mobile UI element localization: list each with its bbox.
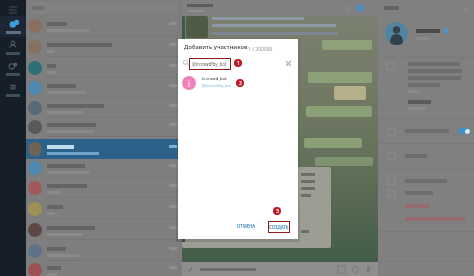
staticText: СОЗДАТЬ <box>269 224 289 230</box>
staticText: @itcrowdfby_bot <box>192 61 227 67</box>
button[interactable]: Удалить чат <box>378 214 474 226</box>
button[interactable] <box>26 260 182 276</box>
button[interactable] <box>26 139 182 159</box>
button[interactable]: Контакты <box>0 37 26 58</box>
staticText: 1 / 200000 <box>248 46 273 53</box>
staticText: @itcrowdfby_bot <box>202 83 231 88</box>
button[interactable]: Стикеры <box>352 266 359 273</box>
button[interactable] <box>26 58 182 78</box>
button[interactable] <box>26 220 182 240</box>
button[interactable] <box>26 199 182 219</box>
button[interactable]: Звонок <box>356 4 364 12</box>
staticText: it-crowd_bot <box>202 76 227 82</box>
staticText: 2 <box>239 80 242 87</box>
button[interactable] <box>26 241 182 261</box>
button[interactable] <box>26 178 182 198</box>
button[interactable]: Заблокировать <box>378 201 474 213</box>
button[interactable]: Прикрепить <box>187 266 194 273</box>
button[interactable]: Поиск участников <box>189 58 231 70</box>
button[interactable]: Очистить <box>285 60 292 67</box>
button[interactable]: Избранное <box>0 58 26 79</box>
button[interactable] <box>26 117 182 137</box>
staticText: i <box>188 78 191 89</box>
staticText: ОТМЕНА <box>237 223 256 229</box>
staticText: Добавить участников <box>184 43 248 51</box>
button[interactable] <box>26 16 182 36</box>
button[interactable]: Голосовое сообщение <box>366 265 371 273</box>
button[interactable]: Добавить в группу <box>378 176 474 188</box>
button[interactable]: Создать <box>268 221 290 233</box>
button[interactable]: Ещё <box>0 79 26 100</box>
button[interactable] <box>26 158 182 178</box>
button[interactable]: Закрыть <box>462 5 470 13</box>
button[interactable]: Поиск <box>345 5 352 12</box>
staticText: 3 <box>276 208 279 215</box>
button[interactable]: Меню <box>368 5 374 11</box>
button[interactable]: Эмодзи <box>338 266 345 273</box>
button[interactable]: Уведомления <box>378 126 474 138</box>
button[interactable]: Общие чаты <box>378 151 474 163</box>
button[interactable] <box>26 78 182 98</box>
button[interactable]: Все чаты <box>0 16 26 37</box>
button[interactable]: Добавить в папку <box>378 188 474 200</box>
button[interactable]: Отмена <box>237 220 256 232</box>
button[interactable] <box>26 37 182 57</box>
button[interactable] <box>26 98 182 118</box>
button[interactable]: Menu <box>0 4 26 16</box>
button[interactable]: it-crowd_bot <box>178 75 298 93</box>
staticText: 1 <box>237 60 240 67</box>
